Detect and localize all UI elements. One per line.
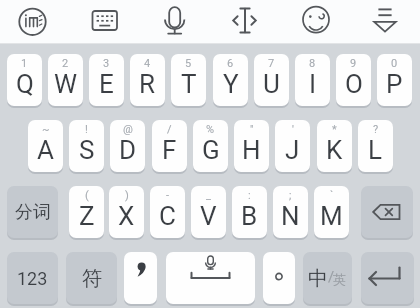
staticText: ? — [373, 123, 379, 136]
staticText: ; — [289, 189, 292, 202]
staticText: I — [309, 69, 317, 99]
staticText: _ — [206, 189, 211, 202]
button[interactable]: 符 — [66, 252, 117, 304]
staticText: K — [326, 135, 343, 165]
staticText: ) — [125, 189, 129, 202]
staticText: ' — [292, 123, 294, 136]
staticText: % — [206, 123, 215, 136]
button[interactable]: 1 — [7, 54, 42, 106]
button[interactable] — [280, 0, 350, 44]
button[interactable]: 9 — [336, 54, 371, 106]
button[interactable] — [210, 0, 280, 44]
staticText: O — [345, 69, 363, 99]
staticText: 6 — [227, 57, 234, 70]
button[interactable] — [350, 0, 420, 44]
staticText: 9 — [350, 57, 357, 70]
staticText: ! — [85, 123, 88, 136]
staticText: T — [181, 69, 197, 99]
button[interactable]: ~ — [28, 120, 63, 172]
button[interactable]: : — [232, 186, 267, 238]
button[interactable] — [361, 252, 414, 304]
staticText: " — [250, 123, 254, 136]
staticText: V — [200, 201, 217, 231]
staticText: F — [162, 135, 177, 165]
button[interactable]: 6 — [213, 54, 248, 106]
staticText: J — [285, 135, 300, 165]
staticText: 0 — [391, 57, 398, 70]
button[interactable]: ' — [275, 120, 310, 172]
staticText: W — [54, 69, 78, 99]
button[interactable] — [166, 252, 255, 304]
staticText: 5 — [185, 57, 192, 70]
button[interactable]: 中 — [303, 252, 352, 304]
button[interactable]: 7 — [254, 54, 289, 106]
staticText: R — [139, 69, 156, 99]
staticText: 3 — [103, 57, 110, 70]
button[interactable]: ; — [273, 186, 308, 238]
staticText: M — [320, 201, 343, 231]
staticText: 7 — [268, 57, 275, 70]
button[interactable]: 分词 — [7, 186, 58, 238]
staticText: 中 — [308, 266, 328, 291]
button[interactable]: * — [317, 120, 352, 172]
button[interactable] — [263, 252, 295, 304]
button[interactable]: " — [234, 120, 269, 172]
staticText: Z — [79, 201, 95, 231]
staticText: X — [118, 201, 135, 231]
staticText: ` — [330, 189, 334, 202]
staticText: ~ — [42, 123, 50, 136]
button[interactable]: ( — [69, 186, 104, 238]
button[interactable]: 3 — [89, 54, 124, 106]
staticText: C — [159, 201, 176, 231]
staticText: 1 — [21, 57, 28, 70]
button[interactable]: - — [150, 186, 185, 238]
staticText: 分词 — [15, 201, 51, 224]
button[interactable]: 0 — [377, 54, 412, 106]
staticText: * — [332, 123, 337, 136]
staticText: / — [328, 268, 335, 286]
button[interactable]: 123 — [7, 252, 58, 304]
button[interactable]: 8 — [295, 54, 330, 106]
button[interactable]: _ — [191, 186, 226, 238]
button[interactable]: % — [193, 120, 228, 172]
staticText: B — [241, 201, 258, 231]
staticText: N — [281, 201, 300, 231]
button[interactable]: 2 — [48, 54, 83, 106]
staticText: 英 — [333, 271, 346, 287]
staticText: L — [368, 135, 383, 165]
staticText: ( — [85, 189, 89, 202]
staticText: @ — [123, 123, 133, 136]
button[interactable]: 5 — [171, 54, 206, 106]
button[interactable] — [140, 0, 210, 44]
button[interactable]: 4 — [130, 54, 165, 106]
button[interactable]: ` — [314, 186, 349, 238]
staticText: U — [263, 69, 280, 99]
button[interactable] — [70, 0, 140, 44]
button[interactable]: / — [152, 120, 187, 172]
staticText: P — [386, 69, 403, 99]
staticText: / — [167, 123, 172, 136]
staticText: G — [202, 135, 220, 165]
button[interactable]: @ — [110, 120, 145, 172]
staticText: S — [79, 135, 95, 165]
staticText: - — [166, 189, 170, 202]
button[interactable] — [124, 252, 157, 304]
staticText: A — [37, 135, 54, 165]
button[interactable]: ? — [358, 120, 393, 172]
staticText: 4 — [144, 57, 151, 70]
staticText: D — [119, 135, 137, 165]
button[interactable] — [0, 0, 70, 44]
button[interactable]: ! — [69, 120, 104, 172]
staticText: Q — [16, 69, 34, 99]
staticText: 2 — [62, 57, 69, 70]
staticText: 123 — [17, 268, 48, 289]
staticText: 符 — [82, 266, 102, 291]
staticText: 8 — [309, 57, 316, 70]
staticText: Y — [223, 69, 239, 99]
button[interactable]: ) — [109, 186, 144, 238]
staticText: : — [248, 189, 251, 202]
button[interactable] — [361, 186, 413, 238]
staticText: H — [242, 135, 261, 165]
staticText: E — [99, 69, 114, 99]
